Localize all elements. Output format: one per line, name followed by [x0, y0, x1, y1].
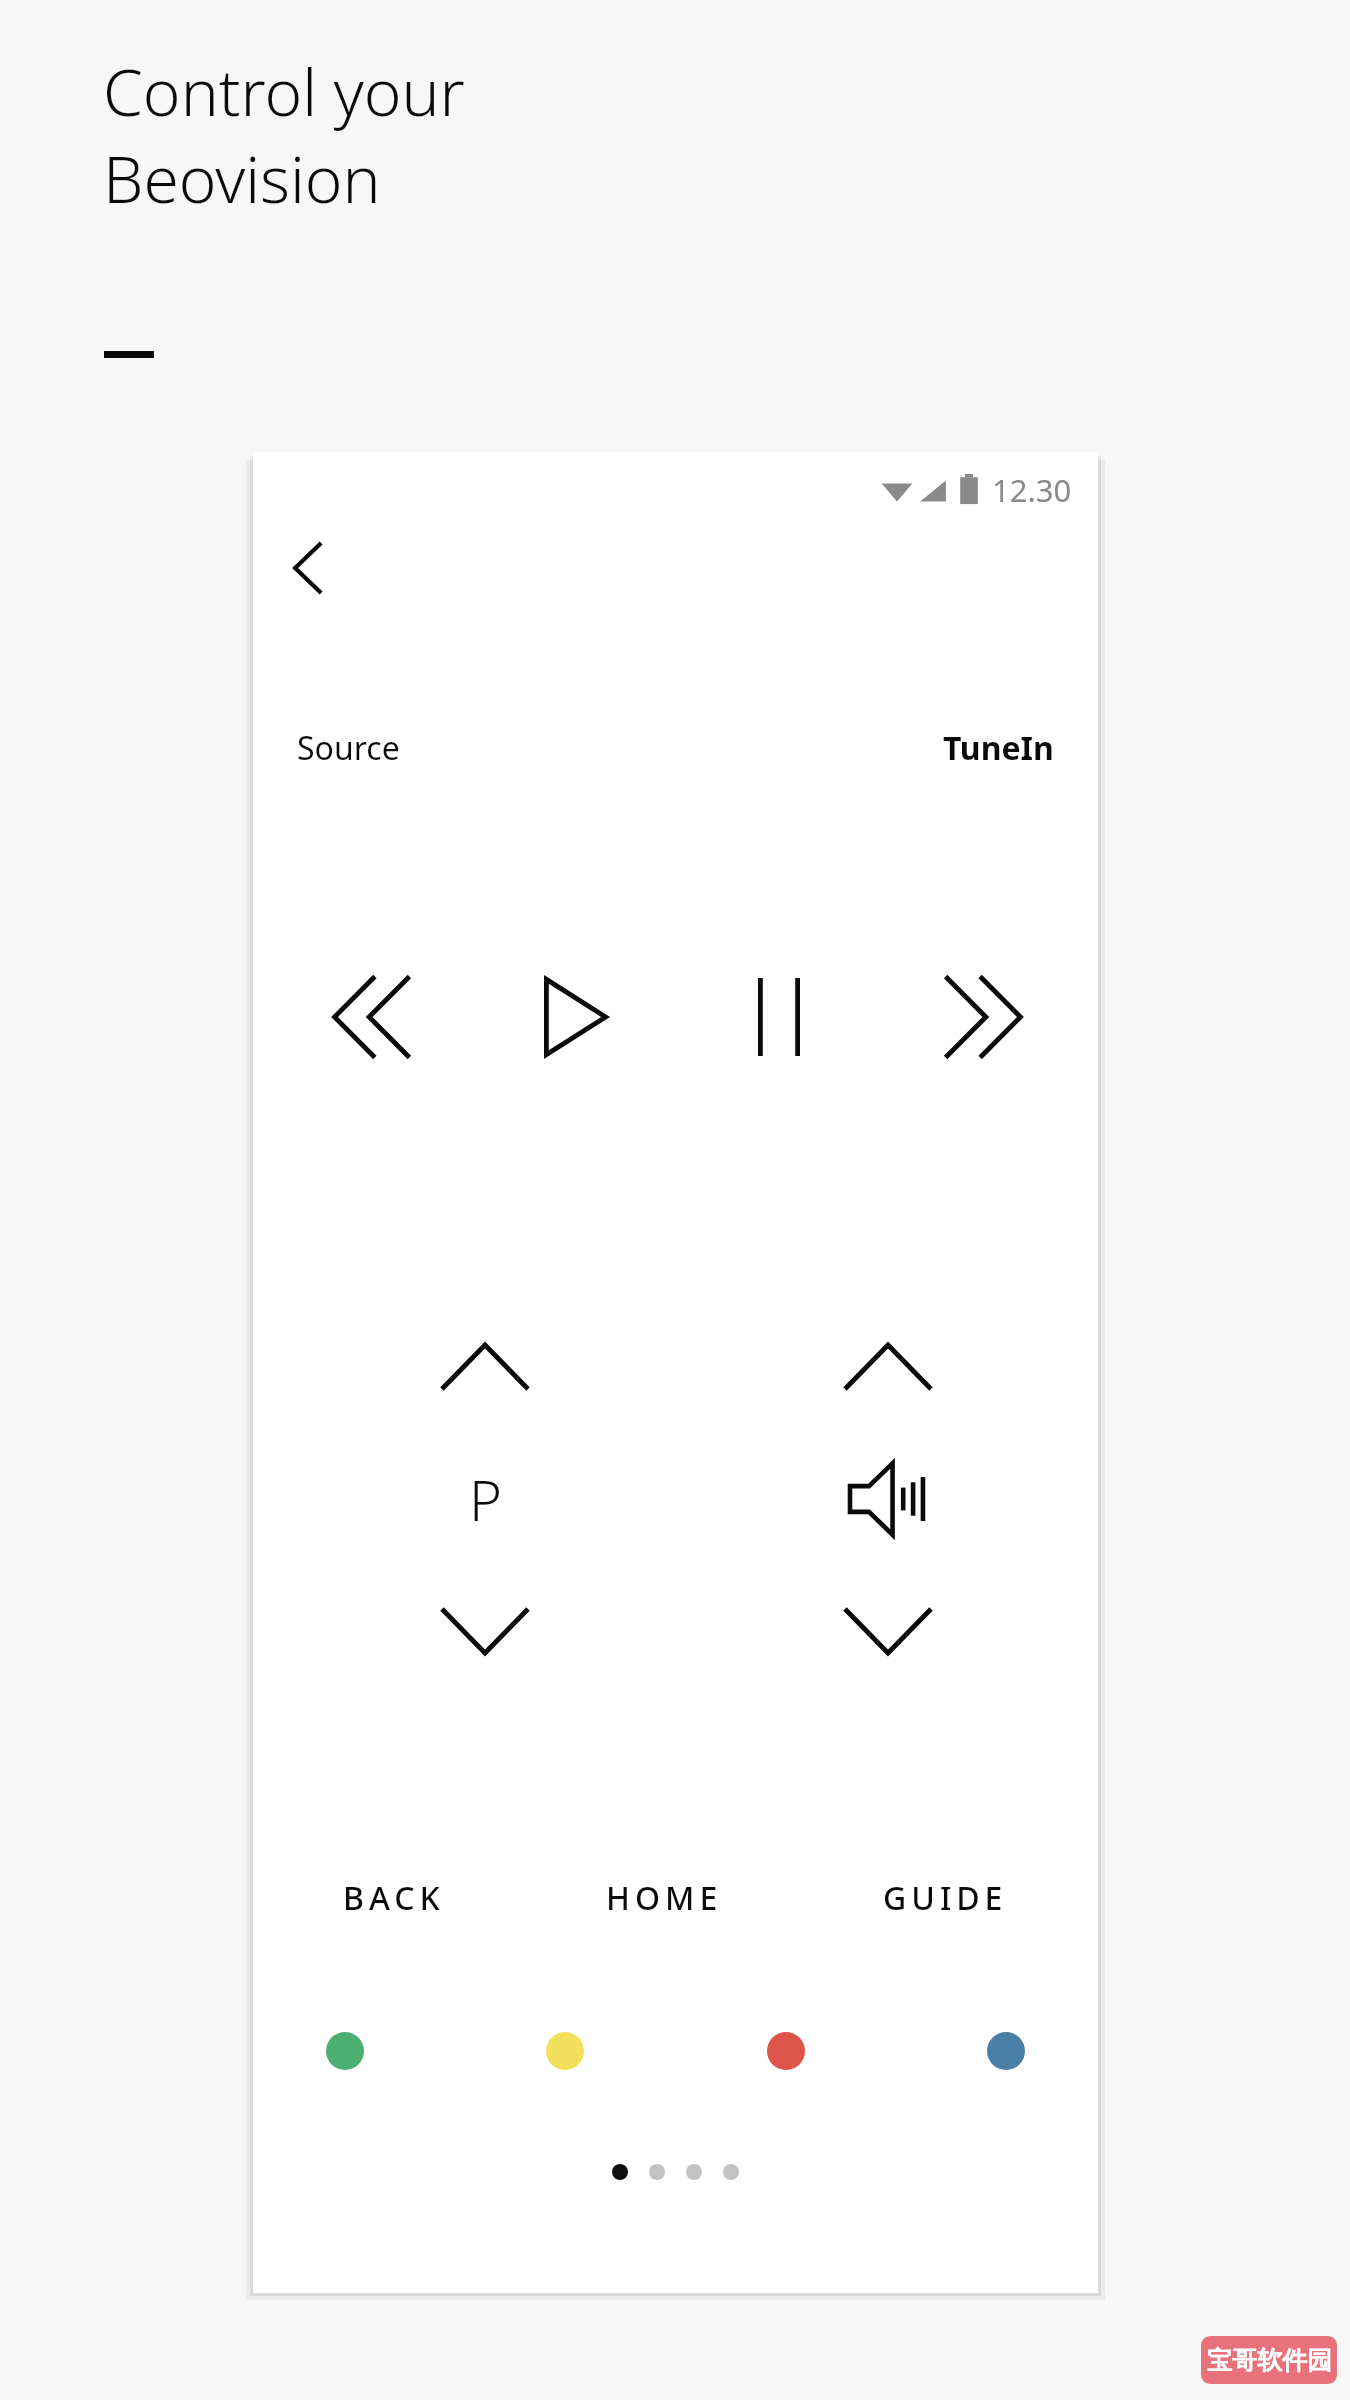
staticText: Control your: [103, 48, 465, 135]
button[interactable]: Select: [420, 1449, 550, 1549]
button[interactable]: Green button: [301, 2007, 389, 2095]
button[interactable]: BACK: [335, 1860, 453, 1936]
button[interactable]: HOME: [598, 1860, 731, 1936]
button[interactable]: Red button: [742, 2007, 830, 2095]
staticText: Source: [297, 726, 400, 770]
button[interactable]: Source: [297, 726, 1054, 770]
staticText: TuneIn: [943, 726, 1054, 770]
staticText: HOME: [606, 1876, 723, 1920]
button[interactable]: Play: [501, 942, 651, 1092]
staticText: BACK: [343, 1876, 445, 1920]
staticText: P: [469, 1461, 502, 1537]
staticText: 宝哥软件园: [1207, 2345, 1332, 2376]
staticText: 12.30: [992, 469, 1072, 511]
button[interactable]: Select: [823, 1449, 953, 1549]
button[interactable]: Blue button: [962, 2007, 1050, 2095]
button[interactable]: Programme up: [420, 1317, 550, 1417]
button[interactable]: Volume up: [823, 1317, 953, 1417]
staticText: GUIDE: [883, 1876, 1008, 1920]
button[interactable]: Fast forward: [908, 942, 1058, 1092]
button[interactable]: Volume down: [823, 1581, 953, 1681]
button[interactable]: Back: [267, 530, 343, 606]
button[interactable]: Pause: [704, 942, 854, 1092]
button[interactable]: GUIDE: [875, 1860, 1016, 1936]
button[interactable]: Programme down: [420, 1581, 550, 1681]
button[interactable]: Yellow button: [521, 2007, 609, 2095]
staticText: Beovision: [103, 135, 381, 222]
button[interactable]: Rewind: [297, 942, 447, 1092]
